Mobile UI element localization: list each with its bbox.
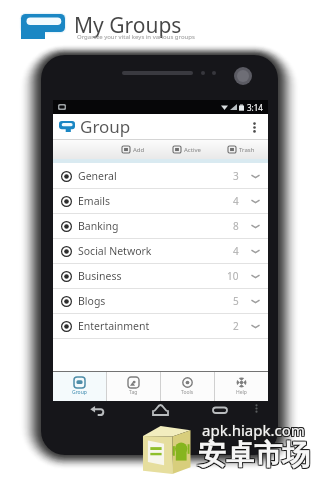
- button[interactable]: Emails: [53, 189, 268, 213]
- staticText: 3: [233, 169, 239, 183]
- staticText: 3:14: [247, 102, 263, 113]
- staticText: Social Network: [78, 244, 152, 258]
- staticText: 4: [233, 244, 239, 258]
- staticText: 5: [233, 294, 239, 308]
- staticText: 安卓市场: [197, 437, 309, 472]
- button[interactable]: Banking: [53, 214, 268, 238]
- button[interactable]: Tools: [161, 372, 214, 401]
- staticText: apk.hiapk.com: [202, 419, 305, 439]
- staticText: apk.hiapk.com: [201, 420, 304, 440]
- staticText: 安卓市场: [198, 437, 310, 472]
- staticText: Trash: [239, 146, 255, 154]
- staticText: 安卓市场: [198, 436, 310, 471]
- staticText: 安卓市场: [199, 437, 311, 472]
- staticText: 8: [233, 219, 239, 233]
- staticText: 4: [233, 194, 239, 208]
- staticText: apk.hiapk.com: [202, 421, 305, 441]
- staticText: 10: [227, 269, 239, 283]
- staticText: apk.hiapk.com: [201, 419, 304, 439]
- button[interactable]: General: [53, 164, 268, 188]
- button[interactable]: More options: [247, 120, 261, 134]
- button[interactable]: Home: [148, 398, 172, 422]
- staticText: Tools: [181, 389, 194, 396]
- button[interactable]: Blogs: [53, 289, 268, 313]
- staticText: Tag: [129, 389, 138, 396]
- button[interactable]: Social Network: [53, 239, 268, 263]
- button[interactable]: Menu: [249, 401, 263, 415]
- staticText: apk.hiapk.com: [202, 420, 305, 440]
- staticText: My Groups: [74, 11, 182, 40]
- staticText: Blogs: [78, 294, 106, 308]
- button[interactable]: Help: [215, 372, 268, 401]
- staticText: apk.hiapk.com: [203, 420, 306, 440]
- staticText: 2: [233, 319, 239, 333]
- button[interactable]: Back: [85, 398, 109, 422]
- staticText: 安卓市场: [199, 438, 311, 473]
- staticText: Active: [184, 146, 201, 154]
- staticText: Entertainment: [78, 319, 150, 333]
- staticText: 安卓市场: [199, 436, 311, 471]
- button[interactable]: Add: [106, 140, 160, 159]
- button[interactable]: Recents: [208, 398, 232, 422]
- staticText: General: [78, 169, 117, 183]
- staticText: apk.hiapk.com: [203, 421, 306, 441]
- staticText: 安卓市场: [198, 438, 310, 473]
- button[interactable]: Active: [160, 140, 214, 159]
- staticText: Add: [133, 146, 145, 154]
- staticText: Banking: [78, 219, 119, 233]
- staticText: 安卓市场: [197, 436, 309, 471]
- staticText: apk.hiapk.com: [203, 419, 306, 439]
- button[interactable]: Tag: [107, 372, 160, 401]
- staticText: Group: [72, 389, 87, 396]
- staticText: Help: [236, 389, 247, 396]
- button[interactable]: Group: [53, 372, 106, 401]
- staticText: Organize your vital keys in various grou…: [77, 33, 195, 41]
- button[interactable]: Business: [53, 264, 268, 288]
- button[interactable]: Trash: [214, 140, 268, 159]
- staticText: 安卓市场: [197, 438, 309, 473]
- staticText: Emails: [78, 194, 110, 208]
- staticText: apk.hiapk.com: [201, 421, 304, 441]
- button[interactable]: Entertainment: [53, 314, 268, 338]
- staticText: Group: [80, 115, 131, 138]
- staticText: Business: [78, 269, 122, 283]
